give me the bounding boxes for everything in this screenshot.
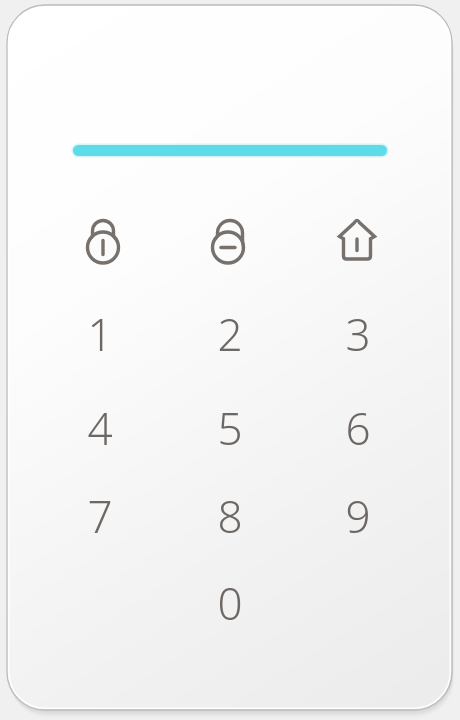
staticText: 5 [217,398,243,458]
button[interactable]: 6 [310,385,406,471]
button[interactable]: 4 [52,385,148,471]
button[interactable]: 0 [182,560,278,646]
button[interactable]: 5 [182,385,278,471]
staticText: 8 [217,486,243,546]
button[interactable]: 2 [182,291,278,377]
button[interactable]: Home [320,203,394,277]
button[interactable]: 8 [182,473,278,559]
button[interactable]: Unlock [193,203,267,277]
button[interactable]: 9 [310,473,406,559]
staticText: 2 [217,304,243,364]
staticText: 0 [217,573,243,633]
button[interactable]: Lock [66,203,140,277]
staticText: 4 [87,398,113,458]
staticText: 6 [345,398,371,458]
button[interactable]: 1 [52,291,148,377]
staticText: 3 [345,304,371,364]
button[interactable]: 3 [310,291,406,377]
staticText: 9 [345,486,371,546]
staticText: 1 [87,304,113,364]
button[interactable]: 7 [52,473,148,559]
staticText: 7 [87,486,113,546]
